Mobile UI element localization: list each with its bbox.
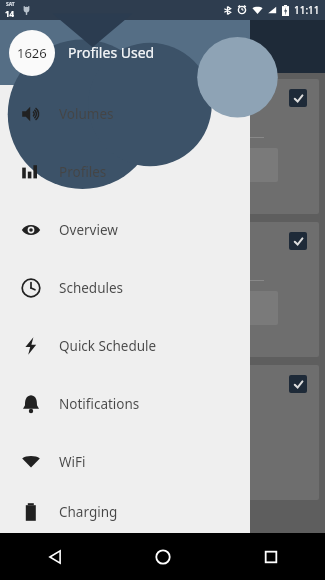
staticText: SAT [6,1,15,8]
button[interactable]: WiFi [0,433,250,491]
staticText: Profiles [59,163,107,181]
button[interactable]: Overview [0,201,250,259]
button[interactable] [8,365,319,500]
button[interactable]: Volumes [0,85,250,143]
staticText: Charging [59,503,118,521]
button[interactable] [8,222,319,357]
staticText: Overview [59,221,118,239]
staticText: 1626 [17,44,47,62]
button[interactable]: Recent apps [217,533,325,580]
button[interactable]: Profiles [0,143,250,201]
staticText: 11:11 [294,3,320,17]
staticText: 14 [5,8,15,19]
staticText: Notifications [59,395,140,413]
button[interactable]: Quick Schedule [0,317,250,375]
button[interactable] [8,79,319,214]
staticText: WiFi [59,453,86,471]
button[interactable]: Notifications [0,375,250,433]
button[interactable]: Home [109,533,217,580]
button[interactable]: Charging [0,491,250,533]
staticText: Schedules [59,279,124,297]
staticText: Profiles Used [68,43,155,62]
staticText: Quick Schedule [59,337,157,355]
button[interactable]: Schedules [0,259,250,317]
button[interactable]: Back [0,533,109,580]
staticText: Volumes [59,105,114,123]
